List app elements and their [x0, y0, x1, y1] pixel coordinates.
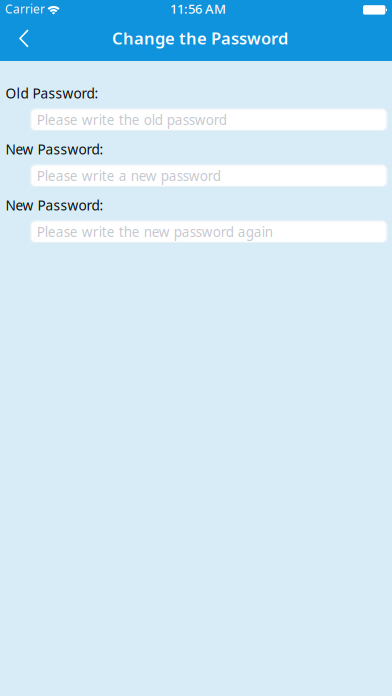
- staticText: New Password:: [6, 140, 104, 158]
- staticText: Please write the old password: [37, 111, 227, 129]
- button[interactable]: Please write the new password again: [0, 221, 357, 243]
- staticText: New Password:: [6, 196, 104, 214]
- staticText: 11:56 AM: [170, 0, 226, 17]
- button[interactable]: Please write a new password: [0, 165, 357, 187]
- staticText: Please write a new password: [37, 167, 221, 185]
- button[interactable]: Please write the old password: [0, 109, 357, 131]
- staticText: Carrier: [5, 1, 45, 17]
- staticText: Old Password:: [6, 84, 99, 102]
- staticText: Please write the new password again: [37, 223, 273, 241]
- button[interactable]: Back: [0, 20, 44, 61]
- staticText: Change the Password: [112, 27, 288, 49]
